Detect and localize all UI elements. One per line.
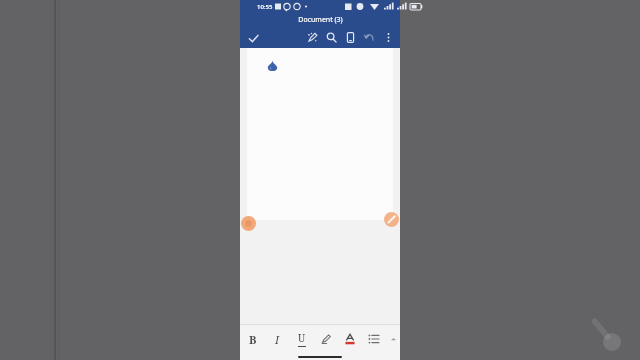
button[interactable]: I — [265, 325, 290, 353]
button[interactable]: Resize handle — [384, 212, 399, 227]
staticText: B — [249, 332, 257, 347]
button[interactable] — [247, 48, 393, 220]
button[interactable]: Undo — [360, 27, 379, 48]
staticText: Document (3) — [298, 15, 343, 25]
button[interactable]: Font colour — [338, 325, 362, 353]
button[interactable]: Search — [322, 27, 341, 48]
button[interactable]: Format painter — [303, 27, 322, 48]
staticText: U — [298, 331, 306, 345]
button[interactable]: More options — [379, 27, 398, 48]
staticText: I — [275, 332, 280, 347]
button[interactable]: Expand — [386, 325, 400, 353]
staticText: 10:55 — [257, 3, 273, 11]
button[interactable]: Bullet list — [362, 325, 386, 353]
button[interactable]: Highlight — [314, 325, 338, 353]
button[interactable]: B — [240, 325, 265, 353]
button[interactable]: U — [290, 325, 314, 353]
button[interactable]: Mobile view — [341, 27, 360, 48]
button[interactable]: Done — [244, 29, 262, 47]
button[interactable]: Selection handle — [241, 216, 256, 231]
